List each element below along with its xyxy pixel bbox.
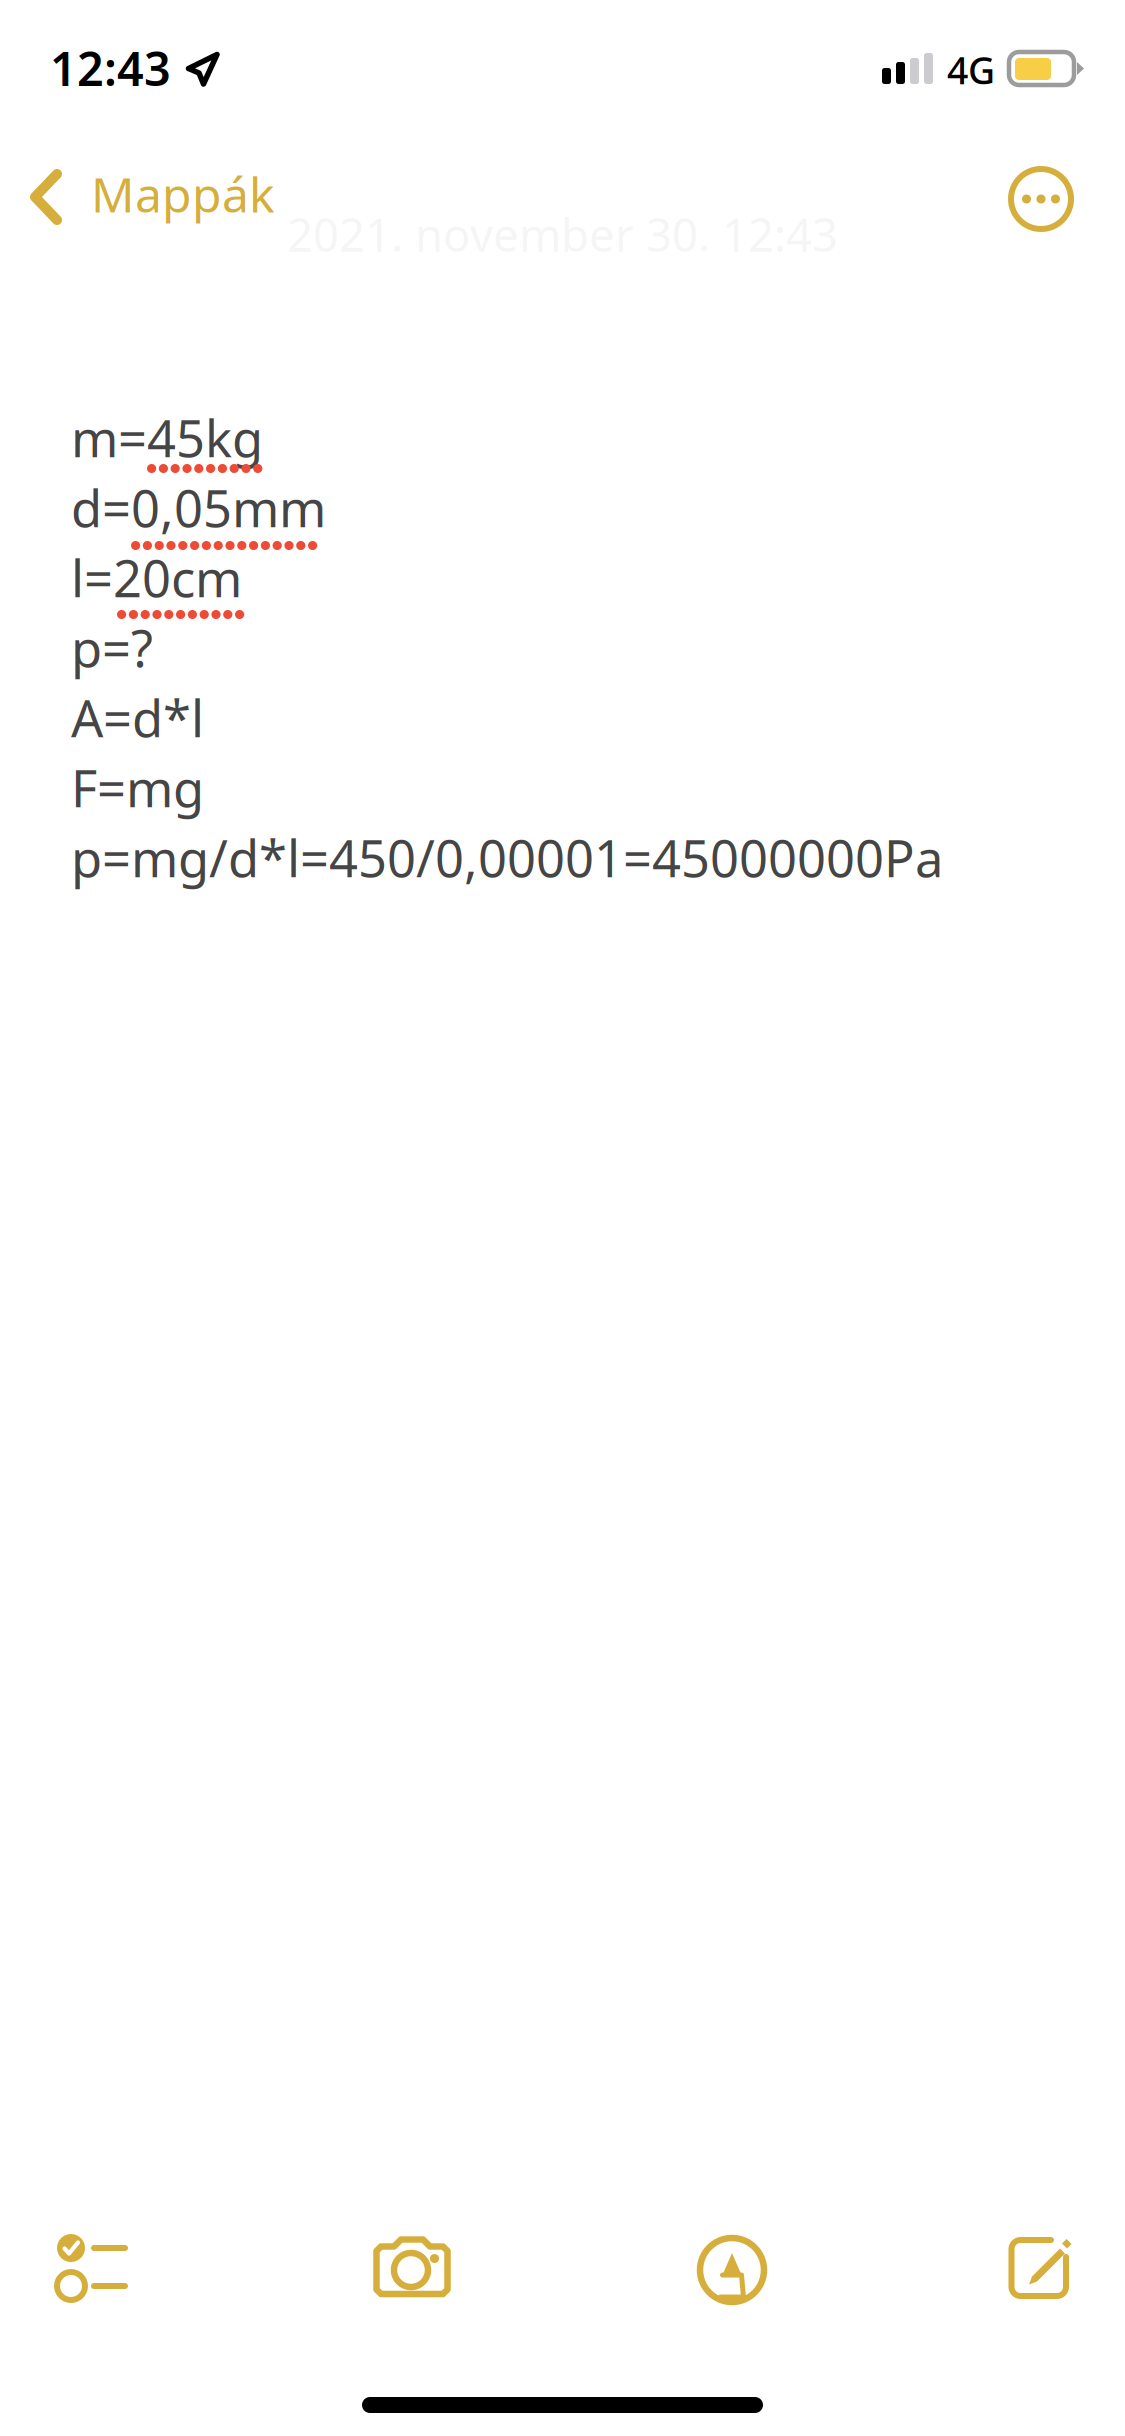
- staticText: p=?: [71, 614, 153, 681]
- staticText: m=45kg: [71, 404, 263, 471]
- staticText: d=0,05mm: [71, 474, 326, 541]
- button[interactable]: Checklist: [14, 2207, 164, 2323]
- staticText: 12:43: [50, 37, 171, 99]
- staticText: 2021. november 30. 12:43: [287, 204, 838, 264]
- button[interactable]: More options: [989, 147, 1093, 251]
- button[interactable]: New note: [980, 2207, 1125, 2323]
- staticText: F=mg: [71, 754, 204, 821]
- staticText: Mappák: [91, 162, 275, 226]
- staticText: 4G: [947, 45, 995, 95]
- button[interactable]: Camera: [337, 2207, 487, 2323]
- staticText: A=d*l: [71, 684, 204, 751]
- button[interactable]: Mappák: [18, 145, 298, 249]
- button[interactable]: Markup: [654, 2207, 804, 2323]
- staticText: p=mg/d*l=450/0,00001=45000000Pa: [71, 824, 943, 891]
- staticText: l=20cm: [71, 544, 242, 611]
